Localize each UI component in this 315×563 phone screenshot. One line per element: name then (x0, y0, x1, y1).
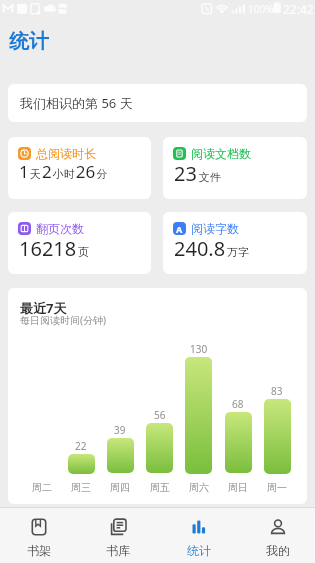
staticText: 书架 (27, 543, 51, 558)
staticText: 周六 (189, 481, 209, 494)
staticText: 周日 (228, 481, 248, 494)
staticText: 16218 页 (19, 235, 90, 262)
button[interactable]: 我们相识的第 56 天 (8, 84, 307, 122)
staticText: 阅读文档数 (191, 146, 251, 161)
staticText: 统计 (187, 543, 211, 558)
staticText: 最近7天 (20, 299, 67, 317)
staticText: 阅读字数 (191, 221, 239, 236)
staticText: 68 (232, 397, 244, 411)
staticText: A (176, 223, 183, 235)
button[interactable]: 我的 (239, 508, 315, 563)
staticText: 周五 (150, 481, 170, 494)
staticText: 1 天 2 小时 26 分 (19, 160, 108, 183)
button[interactable]: 统计 (160, 508, 238, 563)
staticText: 书库 (106, 543, 130, 558)
button[interactable]: 阅读文档数 (163, 137, 307, 199)
staticText: 周二 (32, 481, 52, 494)
staticText: 56 (154, 408, 166, 422)
staticText: 39 (114, 423, 126, 437)
button[interactable]: 书库 (79, 508, 157, 563)
staticText: 翻页次数 (36, 221, 84, 236)
staticText: 22:42 (283, 1, 314, 17)
staticText: 130 (190, 342, 208, 356)
staticText: 100% (248, 2, 274, 16)
staticText: 总阅读时长 (36, 146, 96, 161)
staticText: 我的 (266, 543, 290, 558)
staticText: 周一 (267, 481, 287, 494)
button[interactable]: 最近7天 (8, 288, 307, 504)
button[interactable]: A (163, 212, 307, 274)
staticText: 23 文件 (174, 160, 221, 187)
staticText: 统计 (9, 29, 49, 54)
staticText: 22 (75, 439, 87, 453)
button[interactable]: 书架 (0, 508, 78, 563)
staticText: 每日阅读时间(分钟) (20, 313, 106, 327)
staticText: 83 (271, 384, 283, 398)
staticText: 周三 (71, 481, 91, 494)
button[interactable]: 总阅读时长 (8, 137, 151, 199)
staticText: 周四 (110, 481, 130, 494)
staticText: 我们相识的第 56 天 (20, 94, 133, 112)
staticText: 240.8 万字 (174, 235, 249, 262)
button[interactable]: 翻页次数 (8, 212, 151, 274)
